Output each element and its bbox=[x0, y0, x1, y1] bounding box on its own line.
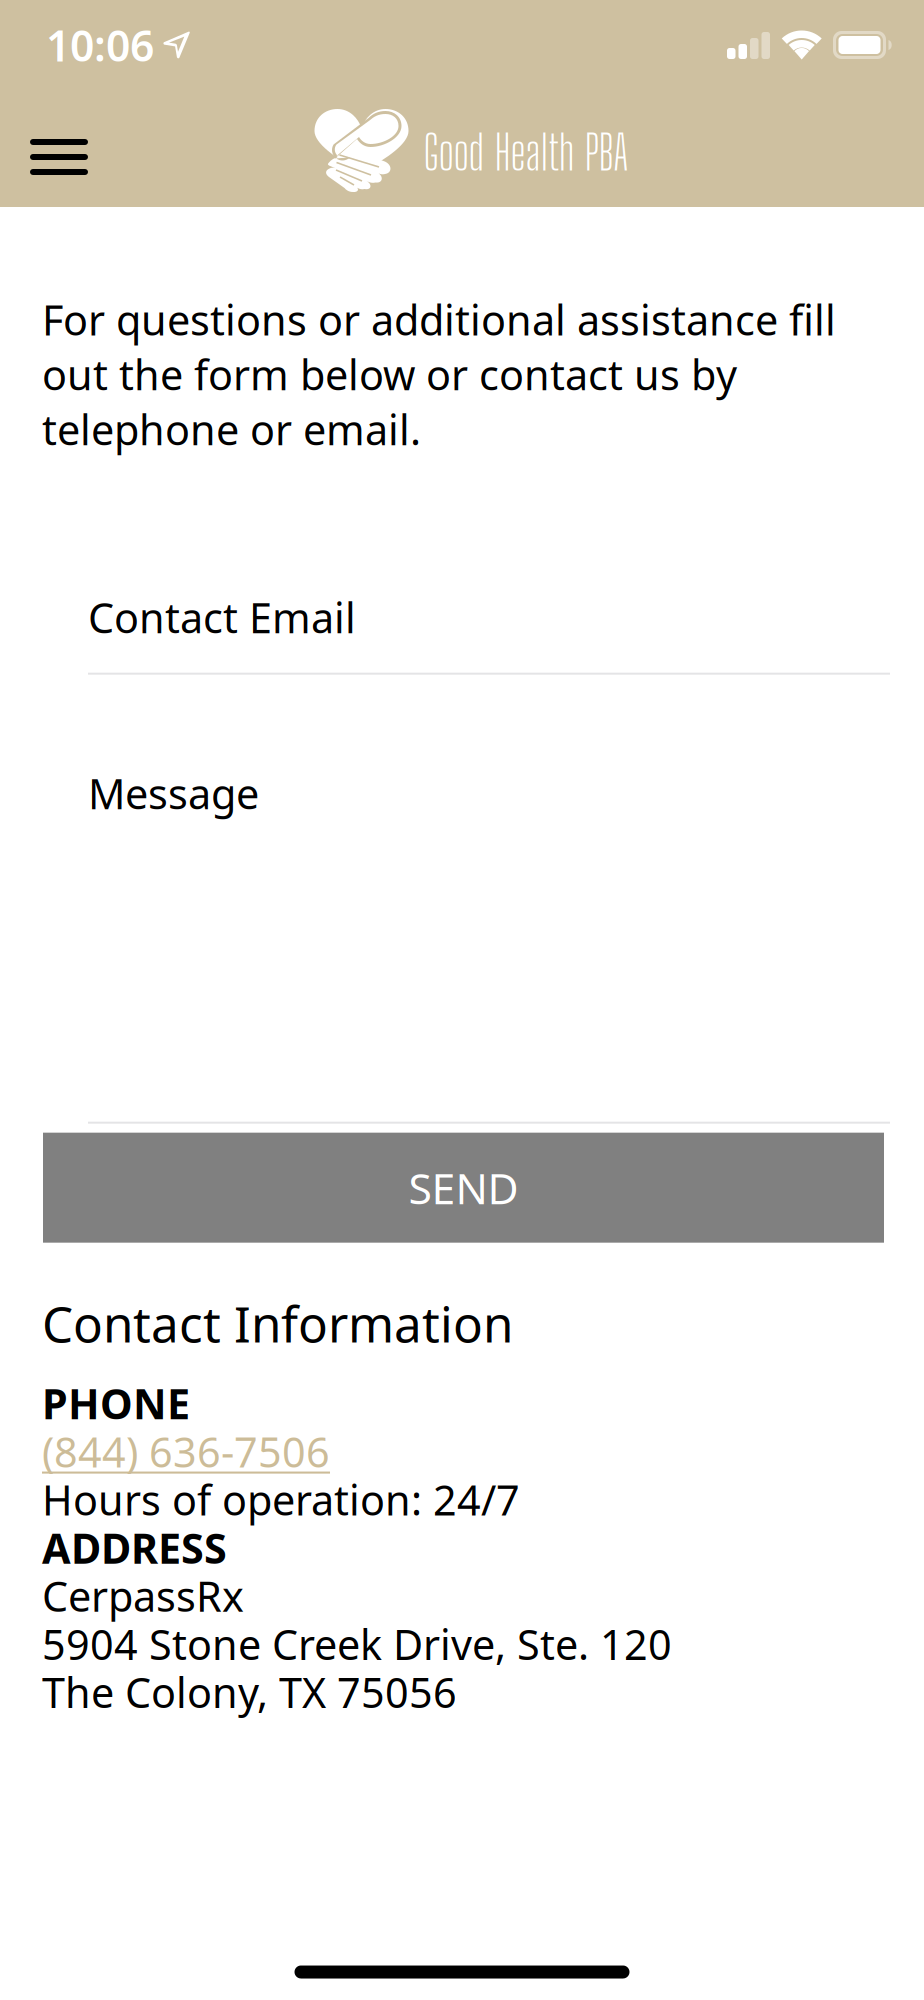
button[interactable]: (844) 636-7506 bbox=[42, 1427, 330, 1475]
staticText: ADDRESS bbox=[42, 1524, 227, 1572]
staticText: SEND bbox=[408, 1159, 518, 1216]
staticText: PHONE bbox=[42, 1379, 190, 1427]
staticText: CerpassRx bbox=[42, 1572, 244, 1620]
staticText: The Colony, TX 75056 bbox=[42, 1668, 457, 1716]
button[interactable]: SEND bbox=[43, 1133, 884, 1243]
button[interactable]: Menu bbox=[15, 118, 103, 196]
staticText: (844) 636-7506 bbox=[42, 1427, 330, 1475]
staticText: For questions or additional assistance f… bbox=[42, 292, 836, 457]
staticText: Message bbox=[88, 766, 259, 821]
staticText: Hours of operation: 24/7 bbox=[42, 1475, 520, 1523]
staticText: Contact Email bbox=[88, 590, 356, 645]
staticText: Contact Information bbox=[42, 1291, 513, 1356]
staticText: Good Health PBA bbox=[423, 123, 628, 181]
staticText: 10:06 bbox=[46, 17, 154, 73]
staticText: 5904 Stone Creek Drive, Ste. 120 bbox=[42, 1620, 672, 1668]
